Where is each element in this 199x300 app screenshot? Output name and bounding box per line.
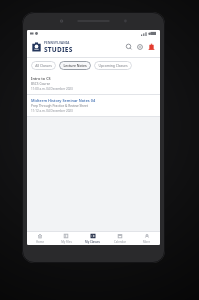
button[interactable]: More: [133, 232, 160, 245]
staticText: My Files: [61, 240, 72, 244]
button[interactable]: All Classes: [31, 61, 56, 70]
button[interactable]: Upcoming Classes: [94, 61, 132, 70]
button[interactable]: Intro to CS: [27, 73, 160, 94]
staticText: BSCS Course: [31, 82, 50, 86]
staticText: More: [143, 240, 150, 244]
button[interactable]: Lecture Notes: [59, 61, 91, 70]
button[interactable]: My Classes: [79, 232, 106, 245]
staticText: 11:00 a.m. 04 December 2023: [31, 87, 73, 91]
staticText: 11:12 a.m. 04 December 2023: [31, 109, 73, 113]
button[interactable]: Search: [125, 43, 133, 51]
staticText: My Classes: [85, 240, 100, 244]
staticText: All Classes: [35, 63, 52, 68]
staticText: Home: [36, 240, 44, 244]
staticText: Calendar: [114, 240, 126, 244]
button[interactable]: Calendar: [106, 232, 133, 245]
button[interactable]: My Files: [53, 232, 79, 245]
staticText: Midterm History Seminar Notes 04: [31, 98, 96, 103]
button[interactable]: Notifications: [147, 43, 156, 52]
button[interactable]: Settings: [136, 43, 144, 51]
staticText: Prep Through Practice & Review Sheet: [31, 104, 88, 108]
button[interactable]: Midterm History Seminar Notes 04: [27, 95, 160, 116]
staticText: Upcoming Classes: [98, 63, 128, 68]
button[interactable]: Home: [27, 232, 53, 245]
staticText: Lecture Notes: [63, 63, 87, 68]
staticText: PENNSYLVANIA: [44, 41, 70, 45]
staticText: STUDIES: [44, 45, 73, 54]
staticText: Intro to CS: [31, 76, 51, 81]
